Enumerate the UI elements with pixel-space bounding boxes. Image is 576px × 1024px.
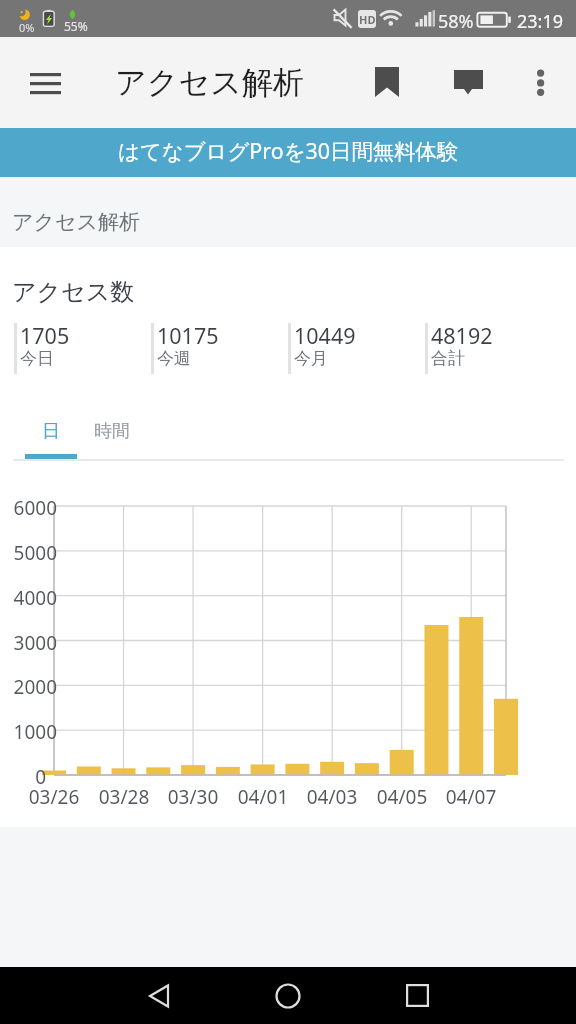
button[interactable]: はてなブログProを30日間無料体験 (0, 128, 576, 177)
staticText: はてなブログProを30日間無料体験 (118, 136, 459, 165)
staticText: 04/07 (436, 784, 506, 810)
staticText: 2000 (0, 674, 57, 700)
button[interactable]: 10449 (288, 323, 420, 374)
staticText: 6000 (0, 495, 57, 521)
staticText: 日 (42, 420, 60, 443)
staticText: 今月 (294, 348, 328, 369)
button[interactable]: Back (128, 967, 192, 1024)
button[interactable]: Home (256, 967, 320, 1024)
button[interactable]: Bookmark (356, 47, 418, 117)
staticText: アクセス数 (12, 277, 135, 307)
staticText: 1000 (0, 719, 57, 745)
staticText: アクセス解析 (115, 63, 304, 102)
staticText: 04/03 (297, 784, 367, 810)
button[interactable]: 日 (25, 409, 77, 453)
staticText: 合計 (431, 348, 465, 369)
staticText: 0 (0, 764, 46, 790)
staticText: 10175 (157, 321, 219, 350)
staticText: 04/05 (367, 784, 437, 810)
staticText: 48192 (431, 321, 493, 350)
staticText: 03/28 (89, 784, 159, 810)
staticText: 1705 (20, 321, 70, 350)
staticText: 3000 (0, 630, 57, 656)
staticText: 今日 (20, 348, 54, 369)
staticText: 5000 (0, 540, 57, 566)
button[interactable]: 時間 (86, 409, 138, 453)
staticText: 4000 (0, 585, 57, 611)
staticText: 10449 (294, 321, 356, 350)
staticText: 03/30 (158, 784, 228, 810)
button[interactable]: 1705 (14, 323, 146, 374)
staticText: 55% (64, 18, 88, 34)
staticText: 23:19 (517, 9, 564, 34)
staticText: 58% (438, 9, 474, 34)
staticText: HD (359, 12, 376, 27)
button[interactable]: 10175 (151, 323, 283, 374)
button[interactable]: 48192 (425, 323, 557, 374)
button[interactable]: Menu (13, 48, 77, 118)
staticText: 今週 (157, 348, 191, 369)
button[interactable]: More options (510, 47, 572, 117)
staticText: 03/26 (19, 784, 89, 810)
button[interactable]: Comments (437, 47, 499, 117)
staticText: アクセス解析 (12, 209, 140, 235)
staticText: 時間 (94, 420, 130, 443)
staticText: 04/01 (228, 784, 298, 810)
button[interactable]: Recents (385, 967, 449, 1024)
staticText: 0% (19, 20, 35, 35)
